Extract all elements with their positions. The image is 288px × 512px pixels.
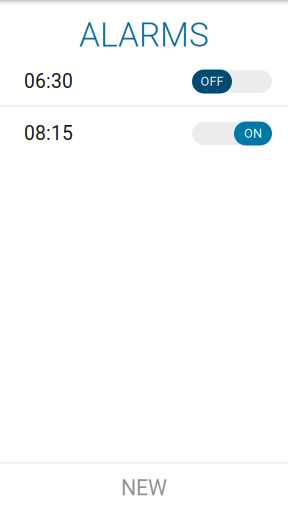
staticText: NEW	[121, 475, 167, 500]
button[interactable]: NEW	[0, 464, 288, 512]
button[interactable]: 06:30	[0, 55, 288, 105]
staticText: OFF	[200, 74, 223, 89]
button[interactable]: 08:15	[0, 107, 288, 157]
staticText: 06:30	[24, 70, 73, 93]
staticText: 08:15	[24, 122, 73, 145]
button[interactable]: OFF	[192, 66, 272, 93]
staticText: ALARMS	[79, 15, 209, 55]
staticText: ON	[244, 126, 262, 141]
button[interactable]: ON	[192, 118, 272, 145]
